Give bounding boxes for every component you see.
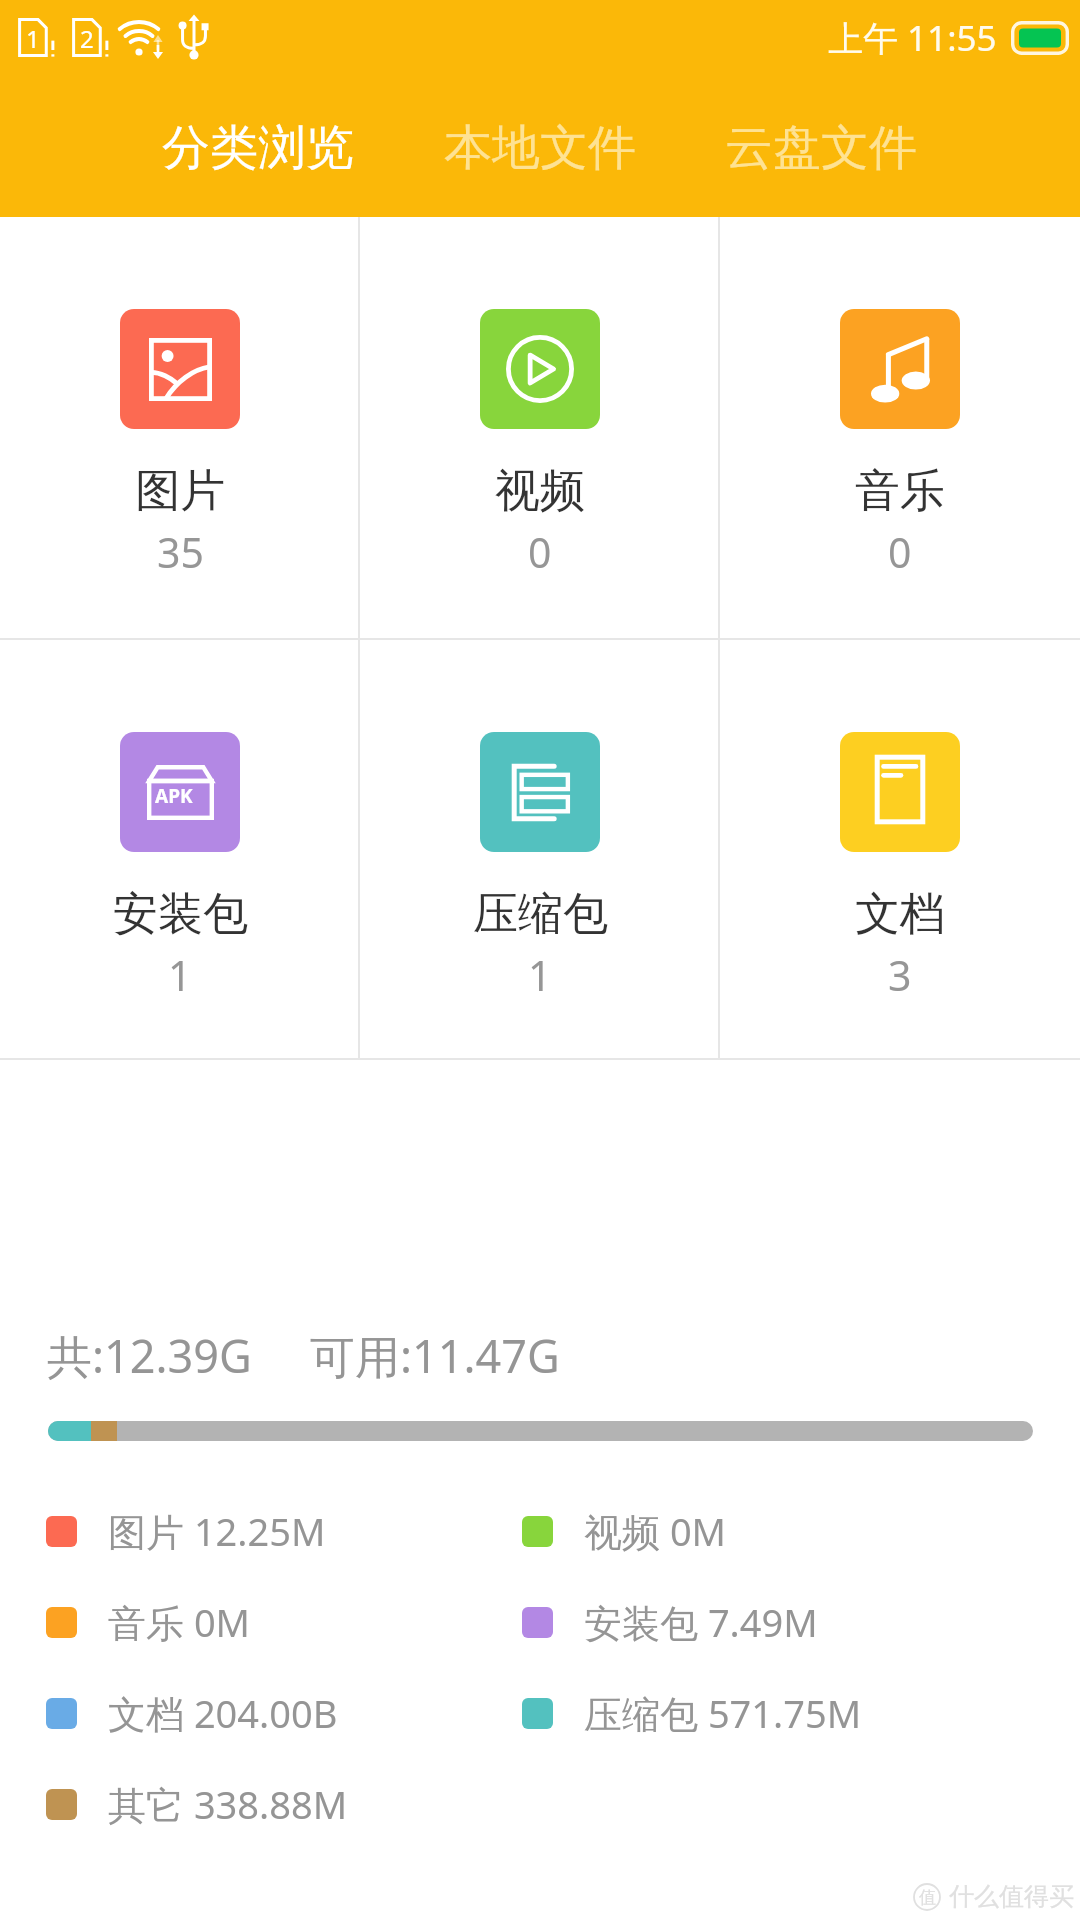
staticText: 压缩包: [473, 886, 608, 943]
staticText: 共:12.39G: [47, 1325, 252, 1386]
button[interactable]: 视频 0: [360, 217, 720, 638]
staticText: 1: [168, 947, 192, 1003]
staticText: 其它 338.88M: [108, 1778, 348, 1830]
button[interactable]: 分类浏览: [117, 84, 399, 211]
staticText: 图片: [135, 463, 225, 520]
staticText: 安装包: [113, 886, 248, 943]
staticText: 35: [157, 524, 204, 580]
button[interactable]: 压缩包 571.75M: [522, 1677, 862, 1749]
button[interactable]: 文档 3: [720, 640, 1080, 1058]
staticText: 云盘文件: [725, 118, 917, 178]
staticText: 什么值得买: [949, 1881, 1074, 1912]
staticText: 视频 0M: [584, 1505, 727, 1557]
button[interactable]: 本地文件: [399, 84, 681, 211]
staticText: 1: [528, 947, 552, 1003]
staticText: 文档 204.00B: [108, 1687, 338, 1739]
staticText: 图片 12.25M: [108, 1505, 326, 1557]
staticText: 分类浏览: [162, 118, 354, 178]
button[interactable]: 压缩包 1: [360, 640, 720, 1058]
button[interactable]: 视频 0M: [522, 1495, 727, 1567]
staticText: 0: [528, 524, 552, 580]
button[interactable]: 图片 35: [0, 217, 360, 638]
staticText: 可用:11.47G: [310, 1325, 560, 1386]
button[interactable]: 云盘文件: [680, 84, 962, 211]
staticText: 压缩包 571.75M: [584, 1687, 862, 1739]
button[interactable]: 音乐 0: [720, 217, 1080, 638]
staticText: 安装包 7.49M: [584, 1596, 818, 1648]
staticText: 3: [888, 947, 912, 1003]
staticText: 2: [80, 22, 94, 55]
button[interactable]: 其它 338.88M: [46, 1768, 348, 1840]
staticText: 0: [888, 524, 912, 580]
staticText: 音乐: [855, 463, 945, 520]
button[interactable]: 文档 204.00B: [46, 1677, 338, 1749]
staticText: 视频: [495, 463, 585, 520]
button[interactable]: 音乐 0M: [46, 1586, 251, 1658]
staticText: 文档: [855, 886, 945, 943]
staticText: 上午 11:55: [828, 14, 997, 62]
staticText: 本地文件: [444, 118, 636, 178]
button[interactable]: 图片 12.25M: [46, 1495, 326, 1567]
button[interactable]: 安装包 1: [0, 640, 360, 1058]
staticText: 值: [919, 1887, 936, 1908]
staticText: 1: [26, 22, 40, 55]
staticText: 音乐 0M: [108, 1596, 251, 1648]
button[interactable]: 安装包 7.49M: [522, 1586, 818, 1658]
staticText: APK: [155, 783, 193, 809]
